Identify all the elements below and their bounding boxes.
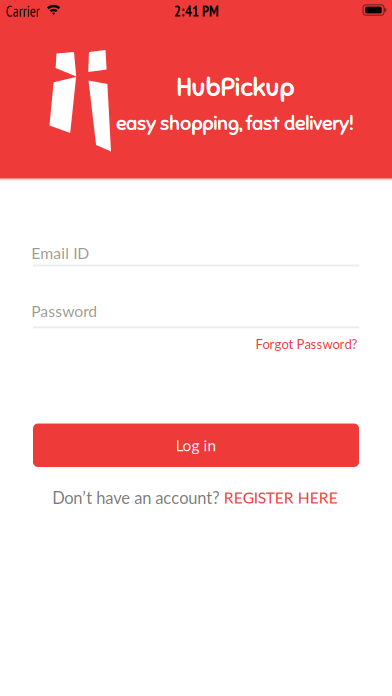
button[interactable]: Forgot Password? [255,336,357,352]
staticText: easy shopping, fast delivery! [116,111,353,135]
textField[interactable]: Email ID [31,243,357,262]
staticText: HubPickup [176,72,294,103]
staticText: 2:41 PM [174,1,219,20]
button[interactable]: Log in [33,423,359,467]
button[interactable]: REGISTER HERE [224,488,338,507]
staticText: Email ID [31,243,89,262]
staticText: Password [31,301,97,320]
staticText: Carrier [6,2,40,21]
staticText: Forgot Password? [255,336,357,352]
staticText: REGISTER HERE [224,488,338,507]
staticText: Don’t have an account? [52,488,219,507]
staticText: HubPickup [177,72,295,103]
staticText: Log in [175,436,216,455]
staticText: easy shopping, fast delivery! [116,112,353,135]
secureTextField[interactable]: Password [31,301,357,320]
